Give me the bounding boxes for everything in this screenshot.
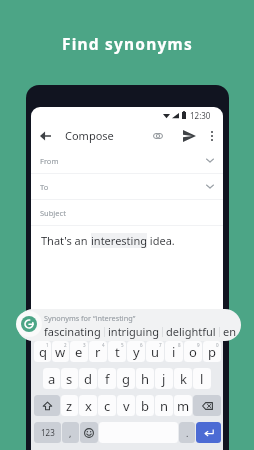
button[interactable]: d — [79, 368, 97, 389]
staticText: 9 — [197, 342, 200, 348]
button[interactable]: fascinating — [44, 324, 101, 339]
staticText: To — [40, 182, 49, 192]
button[interactable]: j — [155, 368, 173, 389]
button[interactable]: h — [136, 368, 154, 389]
button[interactable]: 8 — [165, 341, 183, 362]
staticText: 5 — [121, 342, 124, 348]
button[interactable]: Numbers — [34, 422, 61, 443]
button[interactable]: Synonyms for “interesting” — [17, 309, 241, 341]
staticText: q — [39, 343, 47, 361]
staticText: idea. — [147, 233, 175, 248]
button[interactable]: Period — [179, 422, 195, 443]
button[interactable]: g — [117, 368, 135, 389]
button[interactable]: z — [61, 395, 78, 416]
button[interactable]: 6 — [127, 341, 145, 362]
staticText: 12:30 — [190, 110, 211, 121]
staticText: z — [66, 397, 73, 415]
staticText: i — [172, 343, 176, 361]
button[interactable]: Emoji — [80, 422, 98, 443]
button[interactable]: l — [193, 368, 211, 389]
staticText: , — [69, 427, 72, 439]
staticText: p — [208, 343, 216, 361]
button[interactable]: m — [174, 395, 192, 416]
staticText: 3 — [83, 342, 86, 348]
staticText: s — [66, 370, 73, 388]
button[interactable]: Assistant — [16, 311, 42, 337]
button[interactable]: 7 — [146, 341, 164, 362]
staticText: b — [141, 397, 149, 415]
button[interactable]: en — [223, 324, 237, 339]
staticText: l — [200, 370, 204, 388]
staticText: d — [84, 370, 92, 388]
button[interactable]: intriguing — [108, 324, 159, 339]
staticText: h — [141, 370, 150, 388]
button[interactable]: s — [61, 368, 78, 389]
staticText: . — [186, 427, 189, 439]
staticText: k — [180, 370, 187, 388]
button[interactable]: b — [136, 395, 154, 416]
staticText: interesting — [91, 233, 147, 248]
button[interactable]: 9 — [184, 341, 202, 362]
staticText: w — [55, 343, 66, 361]
staticText: u — [151, 343, 160, 361]
staticText: t — [115, 343, 120, 361]
button[interactable]: 2 — [52, 341, 69, 362]
staticText: Synonyms for “interesting” — [44, 313, 136, 323]
button[interactable]: 0 — [203, 341, 221, 362]
staticText: 0 — [216, 342, 219, 348]
button[interactable]: Send — [179, 126, 199, 146]
staticText: 8 — [178, 342, 181, 348]
staticText: g — [122, 370, 130, 388]
staticText: Compose — [65, 128, 114, 143]
button[interactable]: 1 — [34, 341, 51, 362]
button[interactable]: 4 — [89, 341, 107, 362]
button[interactable]: n — [155, 395, 173, 416]
button[interactable]: v — [117, 395, 135, 416]
staticText: f — [105, 370, 110, 388]
staticText: Find synonyms — [62, 33, 193, 54]
staticText: From — [40, 156, 59, 166]
button[interactable]: f — [98, 368, 116, 389]
staticText: 4 — [102, 342, 105, 348]
staticText: o — [189, 343, 197, 361]
staticText: That's an — [41, 233, 91, 248]
staticText: 1 — [46, 342, 49, 348]
staticText: 6 — [140, 342, 143, 348]
staticText: 123 — [41, 427, 55, 438]
staticText: e — [75, 343, 83, 361]
staticText: a — [48, 370, 56, 388]
button[interactable]: a — [43, 368, 60, 389]
staticText: v — [123, 397, 130, 415]
button[interactable]: Comma — [62, 422, 79, 443]
staticText: x — [85, 397, 92, 415]
button[interactable]: Enter — [196, 422, 221, 443]
staticText: y — [133, 343, 140, 361]
staticText: Subject — [40, 208, 66, 218]
button[interactable]: More options — [204, 128, 220, 144]
button[interactable]: c — [98, 395, 116, 416]
staticText: r — [95, 343, 101, 361]
button[interactable]: Shift — [34, 395, 60, 416]
button[interactable]: Back — [35, 126, 55, 146]
button[interactable]: 3 — [70, 341, 88, 362]
button[interactable]: Backspace — [193, 395, 221, 416]
staticText: j — [162, 370, 166, 388]
button[interactable]: Attach — [148, 126, 168, 146]
staticText: 7 — [159, 342, 162, 348]
button[interactable]: delightful — [166, 324, 216, 339]
staticText: 2 — [64, 342, 67, 348]
staticText: m — [177, 397, 190, 415]
button[interactable]: x — [79, 395, 97, 416]
staticText: c — [104, 397, 111, 415]
staticText: n — [160, 397, 169, 415]
button[interactable]: k — [174, 368, 192, 389]
button[interactable]: 5 — [108, 341, 126, 362]
